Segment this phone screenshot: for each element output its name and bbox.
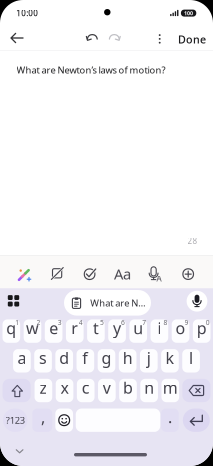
staticText: d [59,347,69,368]
button[interactable]: i [151,319,168,343]
button[interactable]: . [161,408,179,432]
staticText: 10:00 [16,8,38,18]
staticText: 100 [184,10,193,17]
staticText: 28 [188,235,198,246]
staticText: What are N… [90,297,145,309]
button[interactable]: j [140,349,158,372]
button[interactable]: g [98,349,115,372]
button[interactable]: m [161,379,179,402]
staticText: , [41,406,45,428]
button[interactable]: h [119,349,136,372]
staticText: l [189,347,193,368]
button[interactable] [108,32,121,44]
button[interactable]: o [172,319,189,343]
staticText: 1 [15,318,19,327]
button[interactable]: v [98,379,116,402]
staticText: c [82,377,90,398]
button[interactable] [180,266,196,282]
button[interactable]: b [119,379,137,402]
button[interactable]: What are N… [64,290,151,316]
staticText: j [147,347,151,368]
button[interactable]: q [2,319,20,343]
button[interactable] [187,291,207,312]
button[interactable]: p [193,319,210,343]
staticText: A [156,273,161,284]
button[interactable]: a [13,349,31,372]
staticText: 6 [121,318,125,327]
staticText: . [168,406,172,428]
staticText: 9 [185,318,189,327]
staticText: x [60,377,68,398]
staticText: 3 [58,318,62,327]
staticText: u [133,317,143,339]
button[interactable] [15,265,33,283]
button[interactable] [2,379,31,402]
staticText: ?123 [6,414,25,426]
button[interactable]: w [24,319,41,343]
button[interactable]: s [34,349,52,372]
staticText: o [175,317,185,339]
staticText: 8 [163,318,167,327]
button[interactable]: e [45,319,62,343]
staticText: What are Newton’s laws of motion? [16,64,165,76]
button[interactable]: , [32,408,52,432]
staticText: n [144,377,154,398]
button[interactable]: r [66,319,84,343]
button[interactable]: ?123 [3,408,27,432]
button[interactable] [183,408,210,432]
staticText: h [123,347,133,368]
button[interactable]: n [140,379,158,402]
staticText: s [39,347,47,368]
button[interactable] [155,32,165,46]
button[interactable] [49,266,65,282]
staticText: i [157,317,161,339]
button[interactable] [76,408,160,432]
staticText: 4 [79,318,83,327]
button[interactable] [86,32,99,44]
staticText: 2 [36,318,40,327]
staticText: Aa [114,264,131,284]
staticText: e [49,317,58,339]
staticText: m [163,377,178,398]
button[interactable] [55,408,73,432]
staticText: w [26,317,39,339]
button[interactable]: l [182,349,200,372]
button[interactable] [82,266,98,282]
button[interactable]: Aa [114,264,131,284]
staticText: y [113,317,121,339]
staticText: 0 [206,318,210,327]
button[interactable] [7,294,19,307]
button[interactable]: y [108,319,126,343]
staticText: b [123,377,133,398]
staticText: g [101,347,111,368]
staticText: v [103,377,111,398]
button[interactable]: c [77,379,94,402]
staticText: p [197,317,207,339]
staticText: t [93,317,99,339]
button[interactable]: Done [178,32,206,46]
staticText: k [165,347,174,368]
button[interactable]: k [161,349,179,372]
button[interactable]: f [76,349,94,372]
staticText: z [39,377,47,398]
staticText: f [82,347,88,368]
staticText: q [6,317,16,339]
staticText: 7 [142,318,146,327]
button[interactable]: A [147,266,163,282]
button[interactable] [15,449,24,455]
staticText: Done [178,32,206,46]
button[interactable]: d [55,349,73,372]
staticText: a [17,347,26,368]
staticText: r [71,317,78,339]
button[interactable] [182,379,210,402]
button[interactable]: t [87,319,105,343]
button[interactable]: u [129,319,147,343]
button[interactable]: z [35,379,52,402]
button[interactable] [8,30,24,46]
button[interactable]: x [56,379,73,402]
staticText: 5 [100,318,104,327]
